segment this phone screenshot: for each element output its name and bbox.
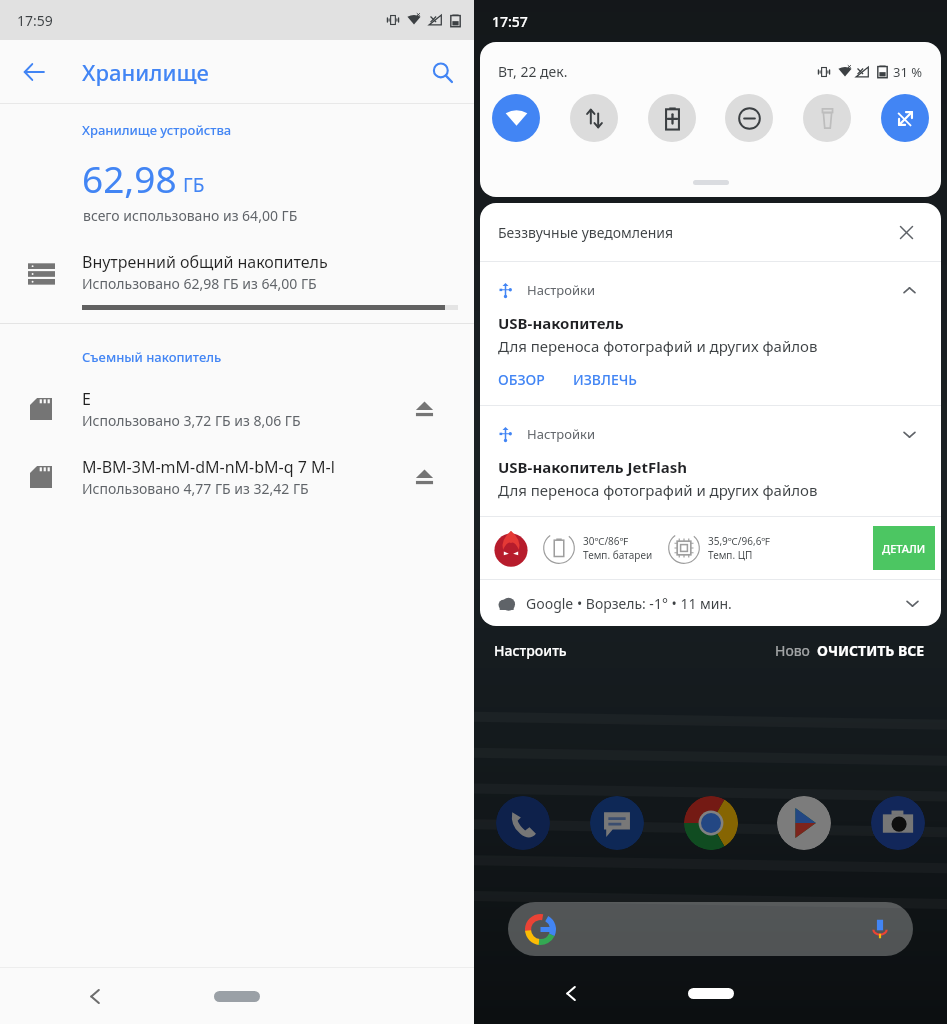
button[interactable]: Развернуть: [897, 588, 927, 618]
staticText: Использовано 4,77 ГБ из 32,42 ГБ: [82, 479, 309, 498]
button[interactable]: Экономия батареи: [648, 94, 696, 142]
button[interactable]: ОЧИСТИТЬ ВСЕ: [813, 637, 929, 664]
button[interactable]: Главный экран: [214, 991, 260, 1002]
staticText: ОБЗОР: [498, 370, 545, 389]
staticText: Хранилище: [82, 57, 209, 87]
button[interactable]: Google • Ворзель: -1° • 11 мин.: [480, 580, 941, 626]
staticText: Темп. батареи: [583, 548, 653, 562]
staticText: ОЧИСТИТЬ ВСЕ: [817, 641, 925, 660]
button[interactable]: Главный экран: [688, 988, 734, 999]
staticText: Съемный накопитель: [82, 348, 222, 366]
button[interactable]: Play Маркет: [777, 796, 831, 850]
staticText: Настроить: [494, 641, 567, 660]
button[interactable]: ИЗВЛЕЧЬ: [573, 370, 638, 389]
button[interactable]: Настроить: [490, 637, 571, 664]
staticText: всего использовано из 64,00 ГБ: [83, 206, 298, 225]
staticText: Настройки: [527, 281, 596, 299]
button[interactable]: Автоповорот: [881, 94, 929, 142]
staticText: 62,98: [82, 153, 177, 203]
staticText: Хранилище устройства: [82, 121, 232, 139]
staticText: ГБ: [183, 172, 205, 198]
button[interactable]: M-BM-3M-mM-dM-nM-bM-q 7 M-l: [0, 456, 474, 498]
staticText: 17:57: [492, 12, 528, 31]
staticText: Google • Ворзель: -1° • 11 мин.: [526, 594, 732, 613]
button[interactable]: Закрыть: [889, 215, 923, 249]
button[interactable]: Внутренний общий накопитель: [0, 251, 474, 293]
button[interactable]: ОБЗОР: [498, 370, 551, 389]
button[interactable]: ДЕТАЛИ: [873, 526, 935, 570]
button[interactable]: Развернуть: [895, 420, 923, 448]
staticText: Вт, 22 дек.: [498, 62, 568, 81]
button[interactable]: Сообщения: [590, 796, 644, 850]
button[interactable]: Телефон: [496, 796, 550, 850]
button[interactable]: Chrome: [684, 796, 738, 850]
staticText: USB-накопитель: [498, 313, 624, 333]
button[interactable]: Свернуть: [895, 276, 923, 304]
button[interactable]: Не беспокоить: [725, 94, 773, 142]
button[interactable]: 30℃/86℉: [480, 517, 941, 579]
staticText: E: [82, 388, 91, 410]
button[interactable]: Назад: [75, 976, 115, 1016]
staticText: Внутренний общий накопитель: [82, 251, 328, 273]
button[interactable]: Назад: [552, 974, 590, 1012]
button[interactable]: E: [0, 388, 474, 430]
staticText: Использовано 3,72 ГБ из 8,06 ГБ: [82, 411, 301, 430]
button[interactable]: Камера: [871, 796, 925, 850]
staticText: Настройки: [527, 425, 596, 443]
staticText: M-BM-3M-mM-dM-nM-bM-q 7 M-l: [82, 456, 335, 478]
staticText: USB-накопитель JetFlash: [498, 457, 687, 477]
button[interactable]: Извлечь: [404, 389, 444, 429]
button[interactable]: Wi-Fi: [492, 94, 540, 142]
staticText: Для переноса фотографий и других файлов: [498, 480, 818, 500]
staticText: ДЕТАЛИ: [882, 541, 926, 556]
staticText: Для переноса фотографий и других файлов: [498, 336, 818, 356]
staticText: 17:59: [17, 11, 53, 30]
button[interactable]: Назад: [12, 50, 56, 94]
button[interactable]: Настройки: [480, 262, 941, 405]
staticText: Использовано 62,98 ГБ из 64,00 ГБ: [82, 274, 317, 293]
staticText: Темп. ЦП: [708, 548, 753, 562]
button[interactable]: Поиск: [420, 50, 464, 94]
staticText: 31 %: [893, 63, 923, 81]
button[interactable]: Мобильный интернет: [570, 94, 618, 142]
button[interactable]: Извлечь: [404, 457, 444, 497]
button[interactable]: Поиск Google: [508, 902, 913, 956]
button[interactable]: Настройки: [480, 406, 941, 516]
staticText: 30℃/86℉: [583, 534, 629, 548]
staticText: Беззвучные уведомления: [498, 223, 674, 242]
staticText: 35,9℃/96,6℉: [708, 534, 771, 548]
staticText: ИЗВЛЕЧЬ: [573, 370, 638, 389]
button[interactable]: Фонарик: [803, 94, 851, 142]
staticText: Ново: [775, 641, 810, 660]
